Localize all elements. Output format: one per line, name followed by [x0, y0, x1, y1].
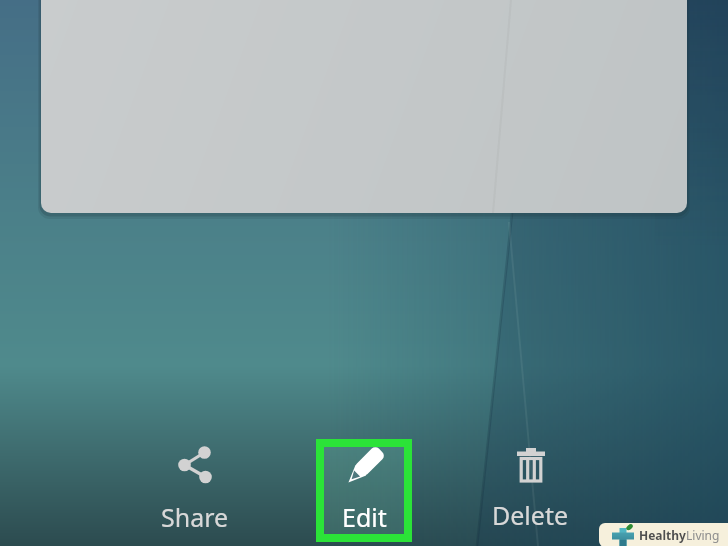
button[interactable]	[41, 0, 687, 213]
staticText: Delete	[492, 498, 569, 532]
button[interactable]: Delete	[483, 438, 577, 538]
staticText: Share	[161, 500, 229, 534]
button[interactable]: Share	[148, 438, 242, 538]
button[interactable]: Edit	[316, 439, 412, 542]
staticText: Living	[686, 527, 720, 543]
staticText: Healthy	[639, 527, 686, 543]
staticText: Edit	[342, 500, 387, 534]
button[interactable]: Healthy	[599, 523, 728, 546]
